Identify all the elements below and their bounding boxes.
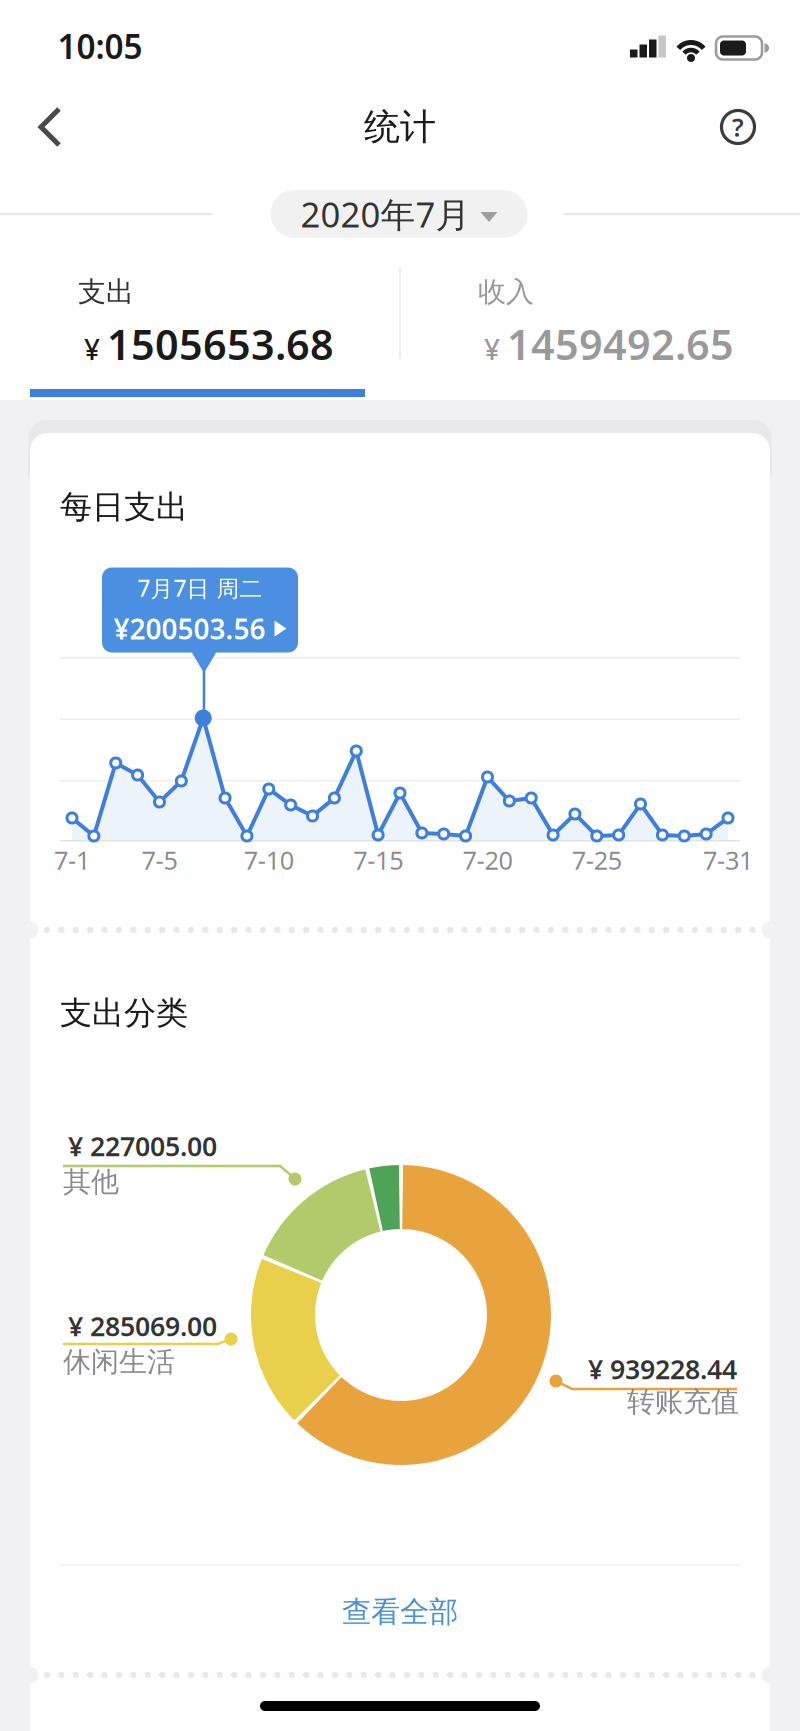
staticText: 10:05 xyxy=(57,24,142,68)
staticText: 支出 xyxy=(78,275,134,309)
staticText: 7-1 xyxy=(54,843,90,877)
button[interactable]: 支出 xyxy=(0,253,396,383)
staticText: ¥200503.56 xyxy=(113,610,265,647)
staticText: 收入 xyxy=(478,275,534,309)
staticText: 其他 xyxy=(63,1165,119,1199)
staticText: 转账充值 xyxy=(627,1385,739,1419)
button[interactable]: 返回 xyxy=(28,101,80,153)
staticText: ¥ 285069.00 xyxy=(68,1308,217,1344)
staticText: ¥ 939228.44 xyxy=(588,1351,737,1387)
staticText: 7月7日 周二 xyxy=(137,573,262,603)
button[interactable]: 7月7日 支出详情 xyxy=(102,567,298,652)
staticText: 支出分类 xyxy=(60,993,188,1033)
staticText: 7-31 xyxy=(703,843,753,877)
staticText: 7-10 xyxy=(244,843,294,877)
staticText: 统计 xyxy=(364,105,436,149)
staticText: ? xyxy=(732,110,744,144)
staticText: 7-20 xyxy=(462,843,512,877)
button[interactable]: 帮助 xyxy=(712,101,764,153)
staticText: 查看全部 xyxy=(342,1594,458,1630)
staticText: 2020年7月 xyxy=(300,191,470,237)
staticText: 每日支出 xyxy=(60,487,188,527)
staticText: 休闲生活 xyxy=(63,1345,175,1379)
staticText: 7-25 xyxy=(572,843,622,877)
button[interactable]: 收入 xyxy=(403,253,799,383)
staticText: ¥ xyxy=(84,331,100,368)
button[interactable]: 查看全部 xyxy=(275,1582,525,1642)
staticText: ¥ xyxy=(484,331,500,368)
staticText: ¥ 227005.00 xyxy=(68,1128,217,1164)
button[interactable]: 2020年7月 xyxy=(270,190,527,238)
staticText: 7-15 xyxy=(353,843,403,877)
staticText: 7-5 xyxy=(141,843,177,877)
staticText: 1459492.65 xyxy=(507,317,734,371)
staticText: 1505653.68 xyxy=(107,317,334,371)
